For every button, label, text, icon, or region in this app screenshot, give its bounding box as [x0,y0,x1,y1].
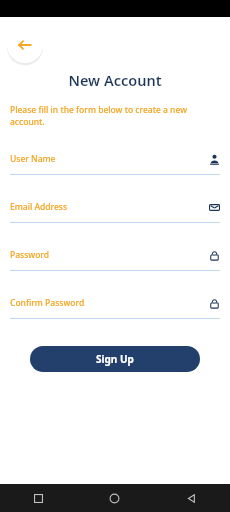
button[interactable]: Back [7,27,43,63]
staticText: Password [10,249,209,261]
button[interactable]: Email Address [0,201,230,223]
button[interactable]: Back [153,484,230,512]
button[interactable]: User Name [0,153,230,175]
button[interactable]: Recent apps [0,484,76,512]
button[interactable]: Password [0,249,230,271]
button[interactable]: Home [76,484,153,512]
staticText: New Account [0,70,230,90]
staticText: User Name [10,153,209,165]
staticText: Please fill in the form below to create … [10,104,214,128]
staticText: Email Address [10,201,209,213]
button[interactable]: Sign Up [30,346,200,372]
button[interactable]: Confirm Password [0,297,230,319]
staticText: Sign Up [96,352,134,366]
staticText: Confirm Password [10,297,209,309]
